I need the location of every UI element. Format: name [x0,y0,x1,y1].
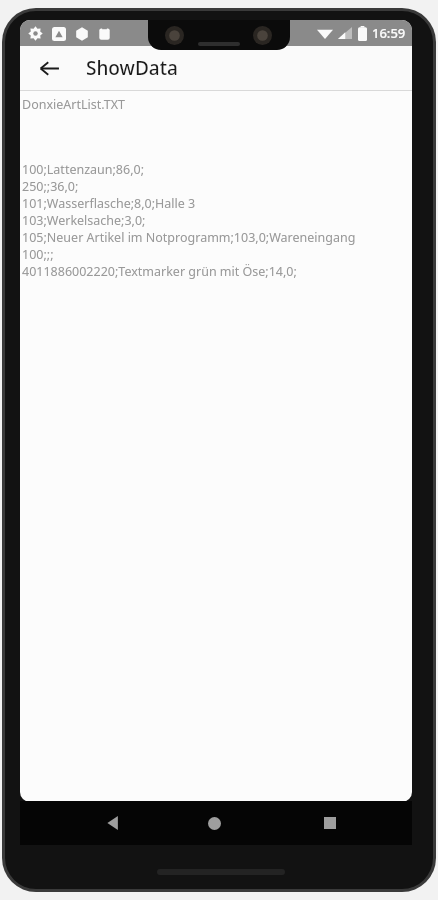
staticText: DonxieArtList.TXT [22,96,125,113]
staticText: 4011886002220;Textmarker grün mit Öse;14… [22,263,297,280]
staticText: 100;Lattenzaun;86,0; [22,161,145,178]
button[interactable]: Recent apps [307,801,353,845]
staticText: 100;;; [22,246,54,263]
button[interactable]: Back [90,801,136,845]
staticText: 16:59 [372,24,406,42]
staticText: 105;Neuer Artikel im Notprogramm;103,0;W… [22,229,356,246]
staticText: 250;;36,0; [22,178,79,195]
staticText: 101;Wasserflasche;8,0;Halle 3 [22,195,196,212]
button[interactable]: Back [29,48,69,88]
staticText: 103;Werkelsache;3,0; [22,212,146,229]
button[interactable]: Home [191,801,237,845]
staticText: ShowData [86,55,178,81]
